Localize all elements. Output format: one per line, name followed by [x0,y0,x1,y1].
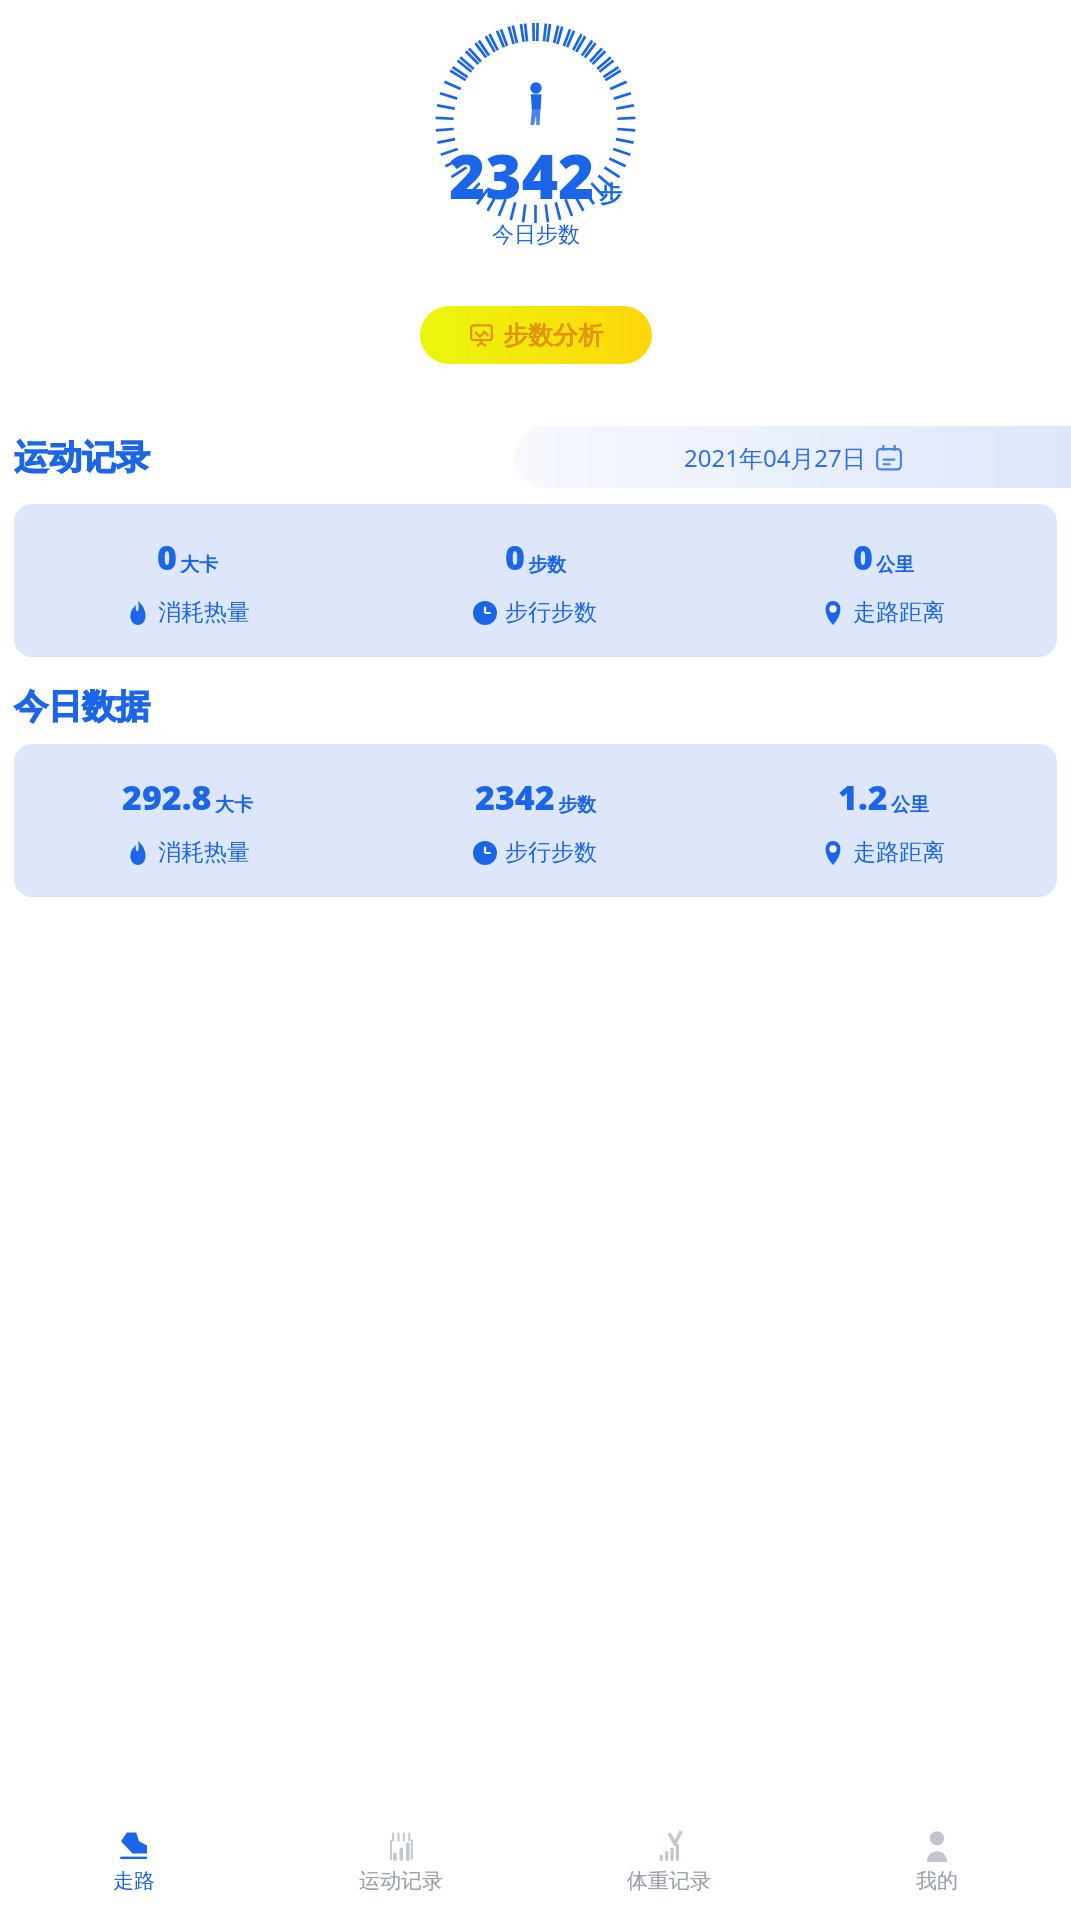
staticText: 1.2 [838,774,888,820]
button[interactable]: 2021年04月27日 [514,426,1071,488]
staticText: 走路距离 [853,598,945,627]
staticText: 292.8 [122,774,212,820]
button[interactable]: 292.8 [14,744,1057,897]
staticText: 今日步数 [492,221,580,249]
staticText: 2021年04月27日 [684,441,866,474]
staticText: 消耗热量 [158,598,250,627]
staticText: 公里 [876,553,914,577]
staticText: 步数分析 [503,320,603,351]
staticText: 2342 [449,133,595,217]
button[interactable]: 步数分析 [420,306,652,364]
button[interactable]: 我的 [803,1823,1071,1900]
button[interactable]: 走路 [0,1823,267,1900]
staticText: 大卡 [215,793,253,817]
staticText: 2342 [475,774,555,820]
staticText: 0 [157,534,177,580]
staticText: 我的 [916,1868,958,1894]
staticText: 走路距离 [853,838,945,867]
staticText: 公里 [891,793,929,817]
staticText: 0 [853,534,873,580]
staticText: 步行步数 [505,838,597,867]
staticText: 0 [505,534,525,580]
staticText: 大卡 [180,553,218,577]
staticText: 走路 [113,1868,155,1894]
staticText: 步数 [528,553,566,577]
staticText: 步 [599,180,622,209]
staticText: 步数 [558,793,596,817]
staticText: 消耗热量 [158,838,250,867]
staticText: 体重记录 [627,1868,711,1894]
button[interactable]: 0 [14,504,1057,657]
staticText: 运动记录 [359,1868,443,1894]
button[interactable]: 运动记录 [267,1823,535,1900]
staticText: 步行步数 [505,598,597,627]
staticText: 今日数据 [14,685,150,728]
button[interactable]: 体重记录 [535,1823,803,1900]
staticText: 运动记录 [14,436,150,479]
other: Pick date [876,445,902,471]
